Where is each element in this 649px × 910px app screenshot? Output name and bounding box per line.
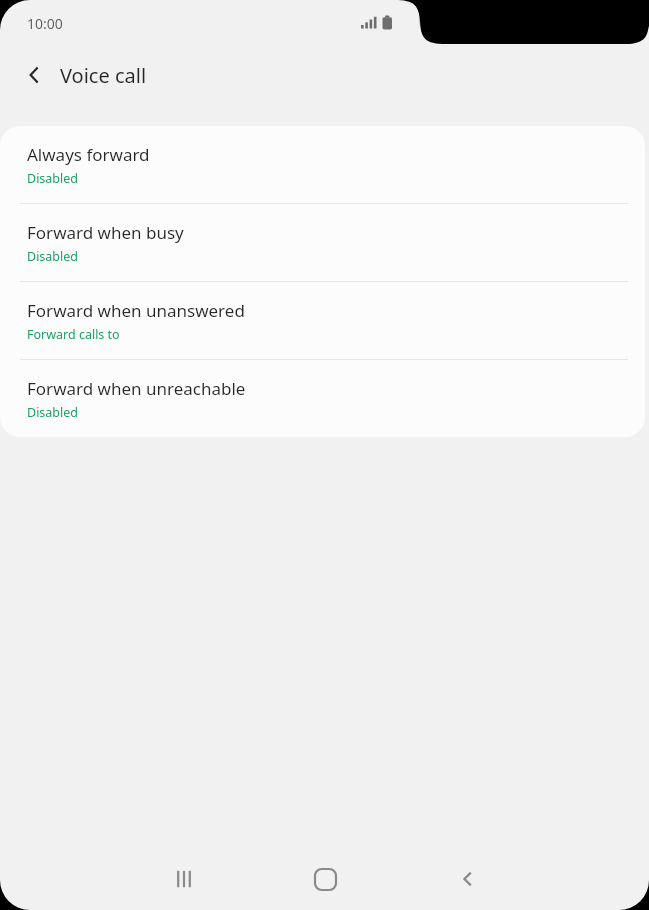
button[interactable]: Always forward [0, 126, 645, 203]
staticText: 10:00 [27, 14, 63, 33]
staticText: Forward when busy [27, 221, 184, 244]
staticText: Disabled [27, 170, 79, 187]
button[interactable]: Back [13, 53, 57, 97]
staticText: Disabled [27, 248, 79, 265]
staticText: Voice call [60, 62, 147, 89]
button[interactable]: Home [297, 851, 353, 907]
staticText: Disabled [27, 404, 79, 421]
button[interactable]: Forward when busy [0, 204, 645, 281]
button[interactable]: Forward when unanswered [0, 282, 645, 359]
button[interactable]: Back [440, 851, 496, 907]
staticText: Forward when unanswered [27, 299, 245, 322]
staticText: Always forward [27, 143, 150, 166]
button[interactable]: Recent apps [156, 851, 212, 907]
button[interactable]: Forward when unreachable [0, 360, 645, 437]
staticText: Forward calls to [27, 326, 120, 343]
staticText: Forward when unreachable [27, 377, 246, 400]
